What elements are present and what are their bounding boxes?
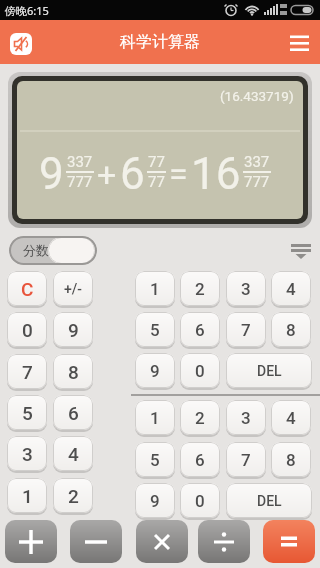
staticText: 0 (195, 491, 205, 511)
button[interactable]: 5 (7, 395, 47, 430)
staticText: 5 (22, 402, 33, 424)
staticText: 2 (195, 279, 205, 299)
staticText: 3 (22, 443, 33, 465)
staticText: 0 (195, 361, 205, 381)
staticText: 9 (39, 148, 64, 200)
button[interactable] (136, 520, 188, 563)
staticText: 777 (67, 173, 93, 191)
button[interactable]: 3 (226, 400, 266, 435)
staticText: 1 (150, 408, 160, 428)
button[interactable]: 9 (135, 483, 175, 518)
button[interactable]: DEL (226, 483, 312, 518)
staticText: 1 (150, 279, 160, 299)
staticText: 5 (150, 450, 160, 470)
staticText: 3 (241, 408, 251, 428)
button[interactable]: 分数 (9, 236, 97, 265)
button[interactable]: 8 (53, 354, 93, 389)
button[interactable] (283, 29, 315, 57)
button[interactable]: +/- (53, 271, 93, 306)
staticText: 77 (148, 153, 165, 171)
staticText: 7 (241, 320, 251, 340)
button[interactable]: 3 (226, 271, 266, 306)
button[interactable] (263, 520, 315, 563)
button[interactable]: 4 (271, 400, 311, 435)
button[interactable] (70, 520, 122, 563)
button[interactable]: 0 (180, 353, 220, 388)
button[interactable]: 7 (7, 354, 47, 389)
button[interactable]: 9 (53, 312, 93, 347)
button[interactable]: C (7, 271, 47, 306)
staticText: 9 (150, 491, 160, 511)
staticText: 3 (241, 279, 251, 299)
button[interactable]: 8 (271, 442, 311, 477)
staticText: 6 (68, 402, 79, 424)
staticText: 4 (286, 279, 296, 299)
button[interactable]: 3 (7, 436, 47, 471)
staticText: 9 (150, 361, 160, 381)
button[interactable]: 6 (180, 312, 220, 347)
staticText: 分数 (23, 242, 49, 258)
staticText: 77 (148, 173, 165, 191)
staticText: 4 (286, 408, 296, 428)
staticText: 16 (191, 148, 241, 200)
staticText: 6 (195, 450, 205, 470)
staticText: 8 (286, 450, 296, 470)
button[interactable]: 2 (53, 478, 93, 513)
staticText: C (21, 278, 34, 300)
staticText: DEL (257, 363, 282, 379)
button[interactable]: 7 (226, 312, 266, 347)
button[interactable]: 6 (53, 395, 93, 430)
button[interactable]: 9 (135, 353, 175, 388)
staticText: 7 (22, 361, 33, 383)
button[interactable]: 1 (135, 271, 175, 306)
staticText: 科学计算器 (120, 32, 200, 52)
button[interactable]: 5 (135, 312, 175, 347)
staticText: 傍晚6:15 (5, 3, 49, 18)
staticText: = (169, 154, 188, 194)
staticText: 2 (68, 485, 79, 507)
button[interactable]: 6 (180, 442, 220, 477)
staticText: 777 (244, 173, 270, 191)
staticText: 6 (120, 148, 145, 200)
button[interactable] (198, 520, 250, 563)
staticText: 8 (286, 320, 296, 340)
staticText: +/- (64, 281, 82, 297)
button[interactable]: 7 (226, 442, 266, 477)
button[interactable]: 1 (7, 478, 47, 513)
button[interactable]: 5 (135, 442, 175, 477)
button[interactable]: 4 (53, 436, 93, 471)
button[interactable] (283, 238, 319, 264)
button[interactable] (10, 33, 32, 55)
staticText: 8 (68, 361, 79, 383)
button[interactable]: 8 (271, 312, 311, 347)
staticText: 7 (241, 450, 251, 470)
staticText: 0 (22, 319, 33, 341)
staticText: 2 (195, 408, 205, 428)
button[interactable]: 1 (135, 400, 175, 435)
button[interactable]: 0 (180, 483, 220, 518)
button[interactable]: DEL (226, 353, 312, 388)
staticText: 6 (195, 320, 205, 340)
button[interactable]: 4 (271, 271, 311, 306)
staticText: 1 (22, 485, 33, 507)
button[interactable]: 0 (7, 312, 47, 347)
staticText: + (97, 154, 117, 194)
staticText: DEL (257, 493, 282, 509)
staticText: (16.433719) (220, 88, 294, 104)
button[interactable]: 2 (180, 400, 220, 435)
staticText: 337 (67, 153, 93, 171)
staticText: 4 (68, 443, 79, 465)
button[interactable] (5, 520, 57, 563)
staticText: 337 (244, 153, 270, 171)
staticText: 5 (150, 320, 160, 340)
staticText: 9 (68, 319, 79, 341)
button[interactable]: 2 (180, 271, 220, 306)
